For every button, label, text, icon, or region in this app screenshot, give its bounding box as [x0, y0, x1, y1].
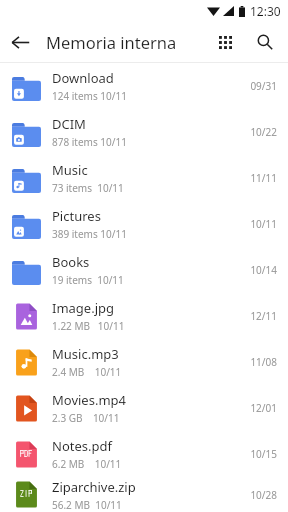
staticText: 56.2 MB 10/11 — [52, 498, 122, 512]
staticText: 12:30 — [250, 3, 281, 19]
button[interactable]: Download — [0, 63, 288, 109]
staticText: 73 items 10/11 — [52, 181, 124, 195]
button[interactable]: Ziparchive.zip — [0, 477, 288, 512]
staticText: 12/01 — [239, 401, 277, 415]
staticText: 19 items 10/11 — [52, 273, 124, 287]
staticText: 1.22 MB 10/11 — [52, 319, 125, 333]
staticText: Music.mp3 — [52, 345, 119, 363]
staticText: 11/08 — [239, 355, 277, 369]
staticText: Notes.pdf — [52, 437, 112, 455]
staticText: 10/14 — [239, 263, 277, 277]
staticText: Ziparchive.zip — [52, 478, 136, 496]
staticText: 124 items 10/11 — [52, 89, 127, 103]
button[interactable]: Music.mp3 — [0, 339, 288, 385]
staticText: 09/31 — [239, 79, 277, 93]
staticText: DCIM — [52, 115, 86, 133]
button[interactable]: Notes.pdf — [0, 431, 288, 477]
button[interactable]: Search — [245, 22, 285, 62]
staticText: 12/11 — [239, 309, 277, 323]
staticText: 10/11 — [239, 217, 277, 231]
staticText: Pictures — [52, 207, 101, 225]
staticText: 2.4 MB 10/11 — [52, 365, 122, 379]
staticText: 389 items 10/11 — [52, 227, 127, 241]
staticText: 10/22 — [239, 125, 277, 139]
button[interactable]: Back — [0, 22, 40, 62]
staticText: Image.jpg — [52, 299, 115, 317]
button[interactable]: Movies.mp4 — [0, 385, 288, 431]
button[interactable]: Books — [0, 247, 288, 293]
staticText: 2.3 GB 10/11 — [52, 411, 120, 425]
staticText: Memoria interna — [46, 31, 177, 53]
staticText: Music — [52, 161, 88, 179]
staticText: 11/11 — [239, 171, 277, 185]
staticText: Movies.mp4 — [52, 391, 126, 409]
staticText: 10/15 — [239, 447, 277, 461]
button[interactable]: Pictures — [0, 201, 288, 247]
staticText: Download — [52, 69, 114, 87]
staticText: 10/28 — [239, 488, 277, 502]
staticText: 6.2 MB 10/11 — [52, 457, 122, 471]
button[interactable]: Grid view — [205, 22, 245, 62]
staticText: Books — [52, 253, 90, 271]
button[interactable]: DCIM — [0, 109, 288, 155]
button[interactable]: Image.jpg — [0, 293, 288, 339]
staticText: 878 items 10/11 — [52, 135, 127, 149]
button[interactable]: Music — [0, 155, 288, 201]
